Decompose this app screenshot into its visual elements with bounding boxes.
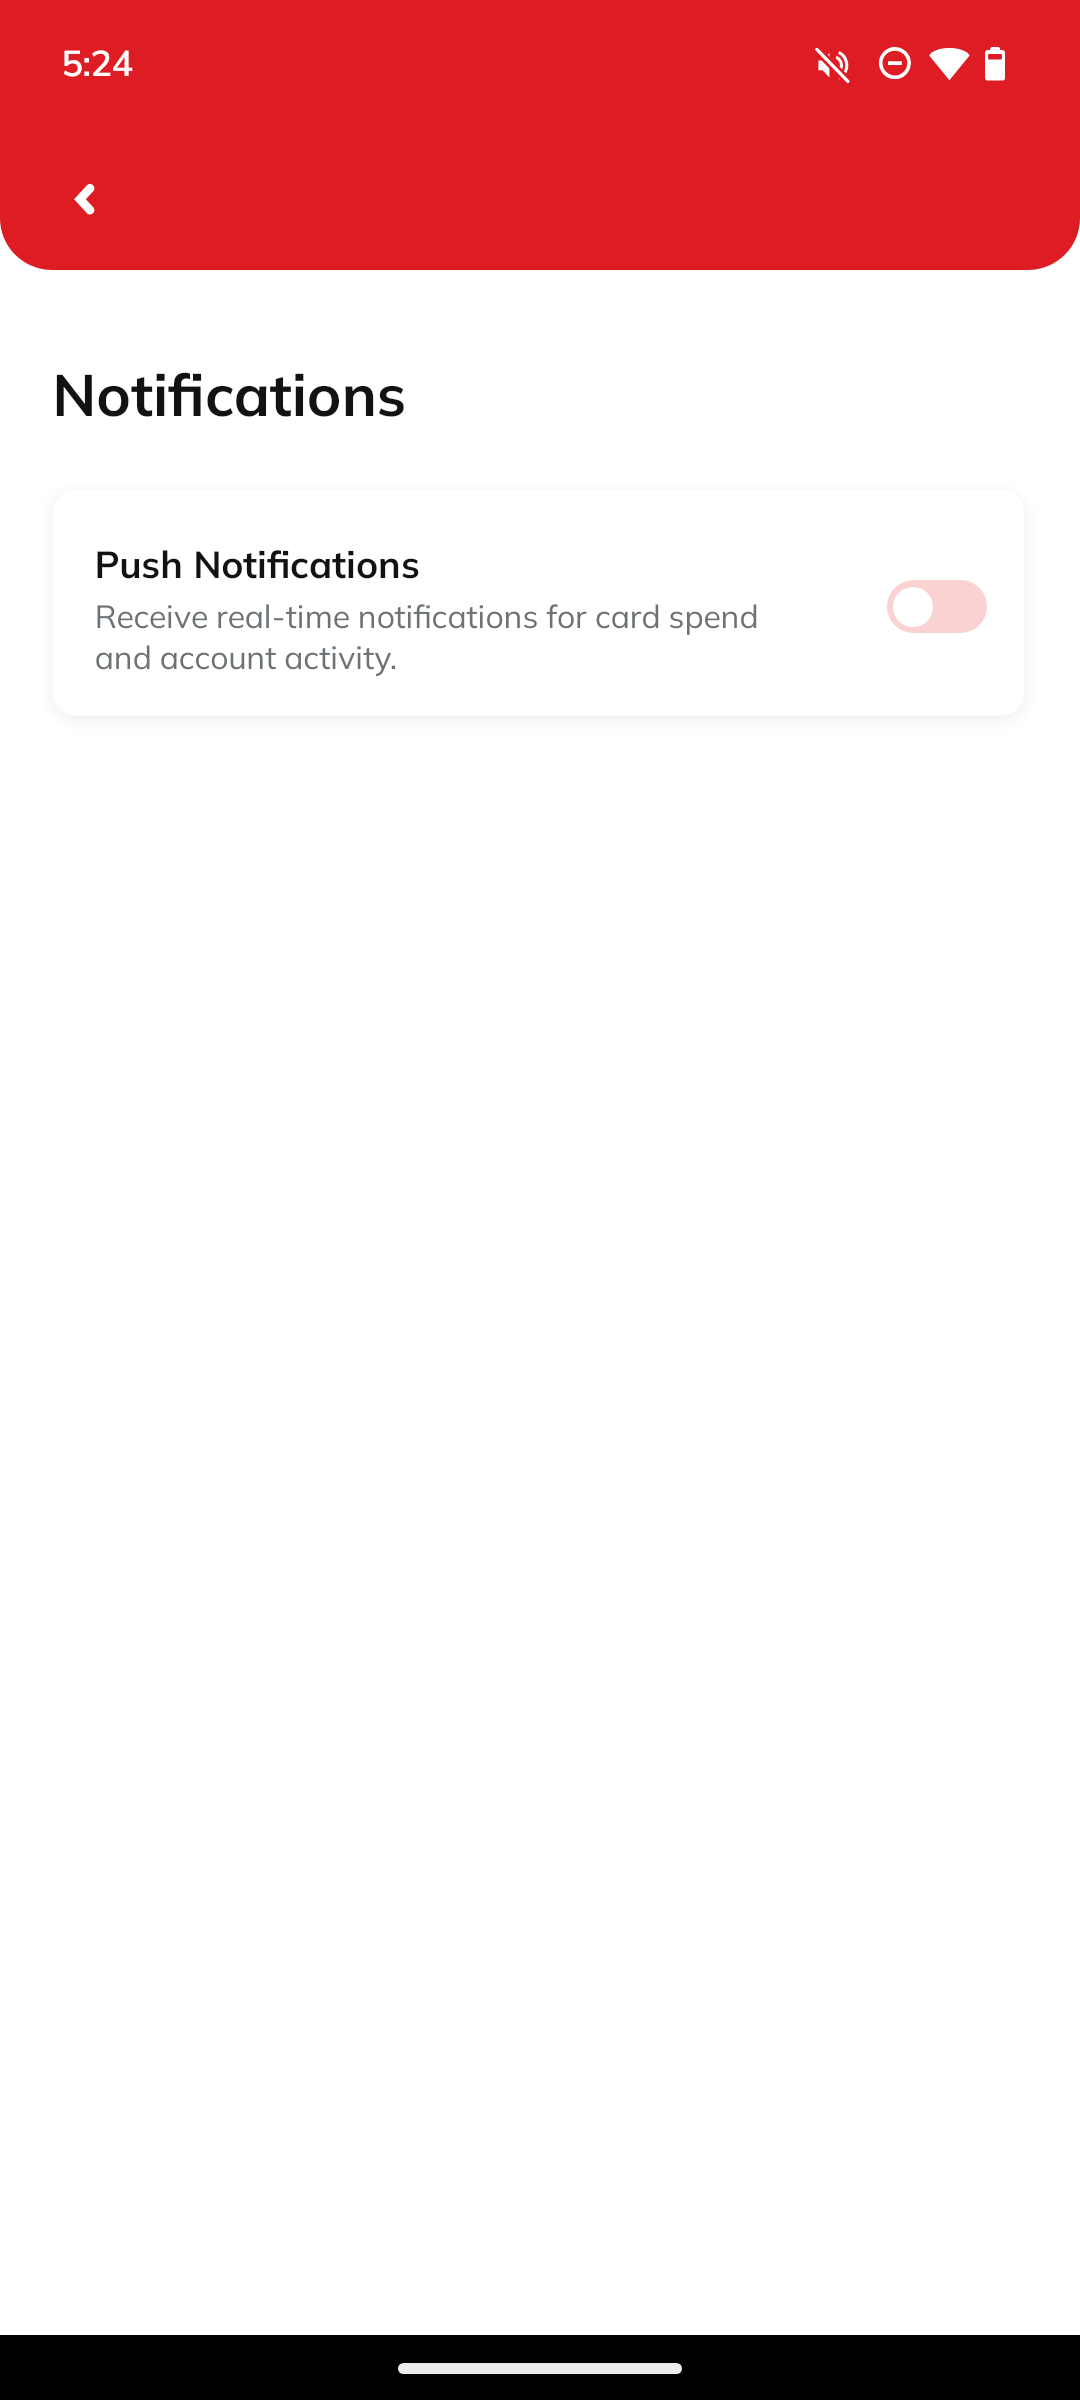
other: Notifications (0, 350, 1080, 440)
button[interactable]: Push Notifications, off (887, 580, 987, 633)
button[interactable]: Back (42, 156, 126, 240)
